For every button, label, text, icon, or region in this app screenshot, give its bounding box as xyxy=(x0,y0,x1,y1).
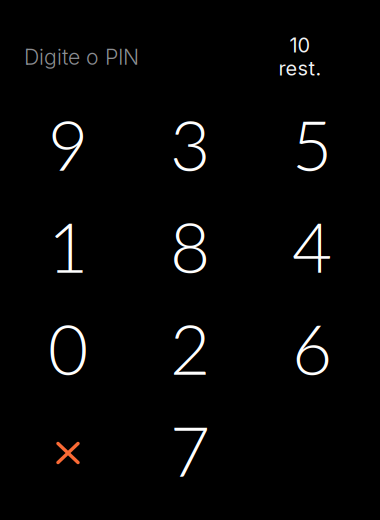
button[interactable]: 1 xyxy=(7,195,129,297)
button[interactable]: 5 xyxy=(251,93,373,195)
button[interactable]: 3 xyxy=(129,93,251,195)
staticText: 10 xyxy=(289,33,310,57)
button[interactable]: 7 xyxy=(129,399,251,501)
staticText: 4 xyxy=(292,204,332,288)
staticText: 0 xyxy=(48,306,88,390)
staticText: 7 xyxy=(170,408,210,492)
button[interactable]: 8 xyxy=(129,195,251,297)
staticText: 6 xyxy=(292,306,332,390)
button[interactable]: 0 xyxy=(7,297,129,399)
button[interactable]: 9 xyxy=(7,93,129,195)
staticText: 2 xyxy=(170,306,210,390)
staticText: 8 xyxy=(170,204,210,288)
button[interactable]: 6 xyxy=(251,297,373,399)
staticText: 1 xyxy=(48,204,88,288)
staticText: rest. xyxy=(278,56,321,80)
staticText: Digite o PIN xyxy=(24,44,139,70)
button[interactable]: 4 xyxy=(251,195,373,297)
button[interactable]: 2 xyxy=(129,297,251,399)
button[interactable]: Delete xyxy=(7,399,129,501)
staticText: 3 xyxy=(170,102,210,186)
staticText: 9 xyxy=(48,102,88,186)
staticText: 5 xyxy=(292,102,332,186)
